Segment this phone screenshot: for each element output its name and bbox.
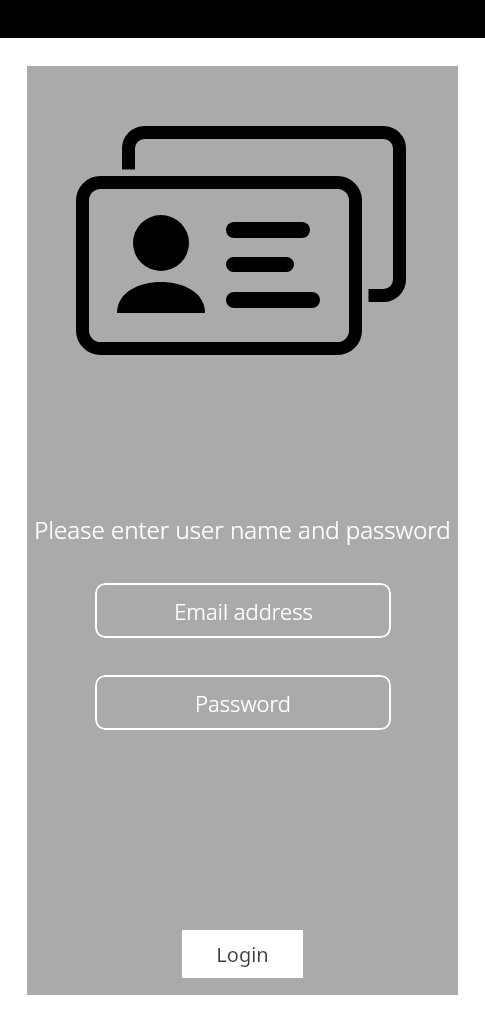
staticText: Login: [216, 941, 269, 968]
staticText: Please enter user name and password: [34, 513, 451, 546]
staticText: Email address: [174, 596, 313, 626]
button[interactable]: Email address: [95, 583, 391, 638]
button[interactable]: Login: [182, 930, 303, 978]
button[interactable]: Password: [95, 675, 391, 730]
staticText: Password: [195, 688, 291, 718]
